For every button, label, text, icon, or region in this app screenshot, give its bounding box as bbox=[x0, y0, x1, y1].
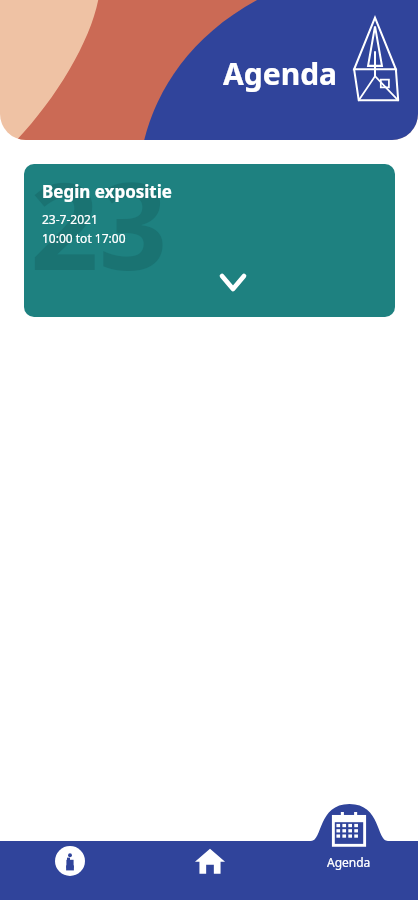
button[interactable]: Informatie bbox=[0, 800, 140, 900]
staticText: 23-7-2021 bbox=[42, 211, 98, 227]
button[interactable]: 23 bbox=[24, 164, 395, 317]
other: Logo bbox=[346, 16, 404, 102]
staticText: 10:00 tot 17:00 bbox=[42, 230, 126, 246]
staticText: Agenda bbox=[223, 53, 338, 94]
staticText: 23 bbox=[30, 164, 168, 295]
staticText: Begin expositie bbox=[42, 180, 172, 203]
staticText: Agenda bbox=[327, 854, 371, 870]
button[interactable]: Uitklappen bbox=[209, 258, 257, 306]
button[interactable]: Home bbox=[140, 800, 279, 900]
button[interactable]: Agenda bbox=[279, 800, 418, 900]
